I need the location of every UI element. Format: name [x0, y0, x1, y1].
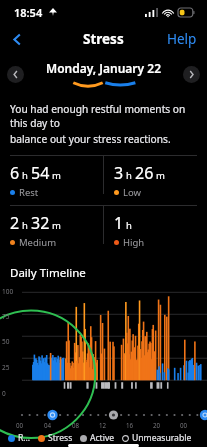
button[interactable]: Next day	[183, 66, 200, 83]
button[interactable]: 3	[104, 156, 197, 205]
staticText: 0	[2, 389, 6, 398]
staticText: Stress	[83, 30, 124, 48]
staticText: h	[126, 169, 132, 182]
staticText: h	[126, 219, 132, 232]
staticText: 20	[153, 421, 161, 429]
staticText: 00	[16, 421, 24, 429]
staticText: 75	[2, 312, 10, 321]
staticText: Low	[123, 186, 142, 199]
staticText: Rest	[19, 186, 39, 199]
button[interactable]: 1	[104, 206, 197, 255]
staticText: Monday, January 22	[46, 60, 161, 76]
staticText: 16	[126, 421, 134, 429]
button[interactable]: Active	[80, 432, 115, 444]
staticText: 25	[2, 363, 10, 372]
staticText: balance out your stress reactions.	[10, 132, 171, 146]
button[interactable]: R…	[8, 432, 31, 444]
staticText: h	[22, 169, 28, 182]
staticText: 04	[44, 421, 52, 429]
staticText: 50	[2, 337, 10, 346]
staticText: 26	[135, 162, 154, 184]
staticText: 00	[180, 421, 188, 429]
staticText: 32	[31, 212, 50, 234]
staticText: High	[123, 236, 145, 249]
staticText: m	[52, 219, 61, 232]
staticText: Help	[167, 30, 197, 48]
staticText: 12	[99, 421, 107, 429]
button[interactable]: Back	[4, 26, 30, 52]
staticText: 3	[114, 162, 124, 184]
staticText: You had enough restful moments on this d…	[10, 102, 197, 130]
button[interactable]: Stress	[38, 432, 73, 444]
button[interactable]: 2	[10, 206, 103, 255]
staticText: 6	[10, 162, 20, 184]
staticText: 100	[2, 287, 14, 296]
staticText: Active	[90, 432, 115, 444]
staticText: Medium	[19, 236, 57, 249]
staticText: R…	[18, 432, 31, 444]
staticText: 54	[31, 162, 50, 184]
staticText: Daily Timeline	[10, 265, 86, 281]
button[interactable]: 6	[10, 156, 103, 205]
button[interactable]: Help	[167, 30, 197, 48]
staticText: 08	[72, 421, 80, 429]
staticText: m	[52, 169, 61, 182]
staticText: 18:54	[14, 5, 43, 20]
staticText: h	[22, 219, 28, 232]
staticText: 2	[10, 212, 20, 234]
staticText: Unmeasurable	[132, 432, 192, 444]
staticText: m	[156, 169, 165, 182]
staticText: Stress	[48, 432, 73, 444]
button[interactable]: Unmeasurable	[122, 432, 192, 444]
staticText: 1	[114, 212, 124, 234]
button[interactable]: Previous day	[7, 66, 24, 83]
